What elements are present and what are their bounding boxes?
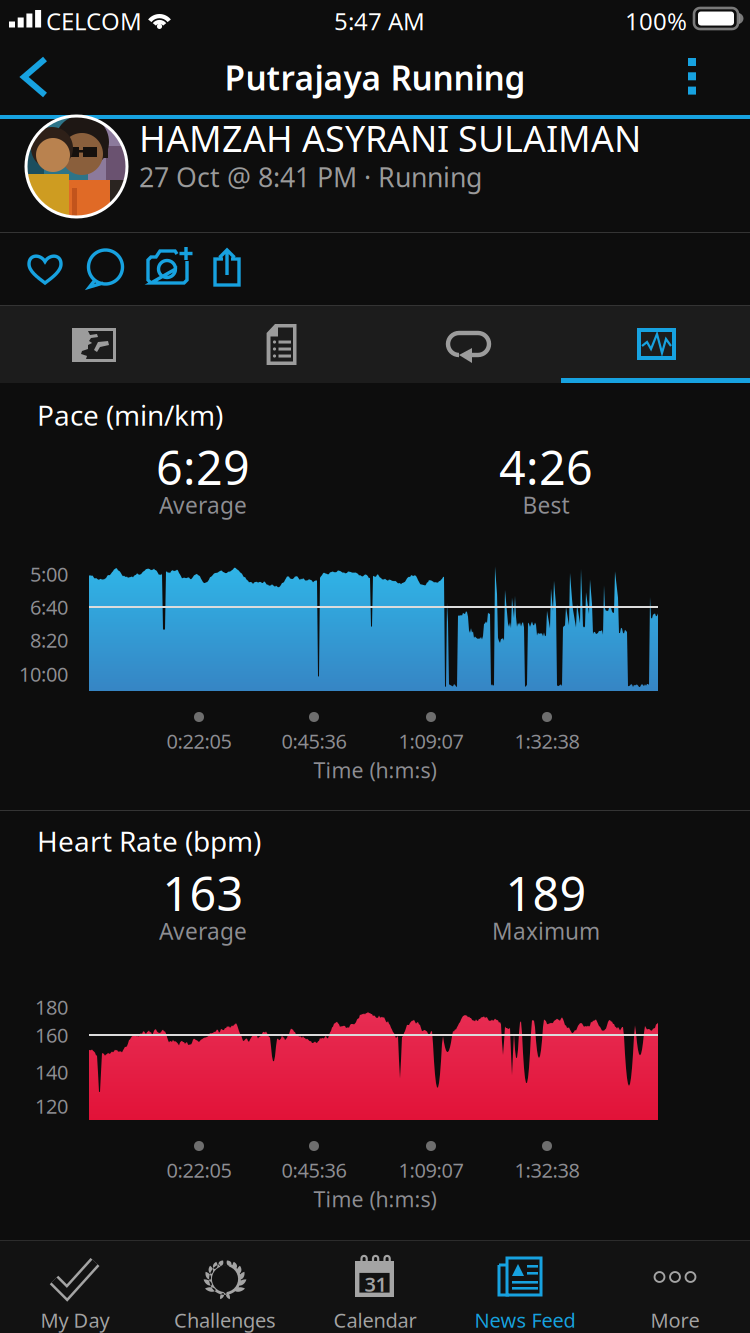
staticText: 31: [364, 1271, 386, 1297]
staticText: 120: [35, 1093, 68, 1119]
staticText: Time (h:m:s): [313, 756, 436, 784]
button[interactable]: Back: [0, 41, 72, 115]
button[interactable]: 31: [300, 1241, 450, 1333]
staticText: Heart Rate (bpm): [37, 822, 261, 860]
staticText: 4:26: [499, 436, 593, 498]
staticText: Average: [159, 490, 247, 520]
staticText: 5:00: [30, 561, 68, 587]
button[interactable]: News Feed: [450, 1241, 600, 1333]
staticText: Time (h:m:s): [313, 1185, 436, 1213]
staticText: 163: [162, 862, 243, 924]
staticText: 1:32:38: [514, 1157, 579, 1183]
staticText: Maximum: [492, 916, 600, 946]
staticText: Best: [522, 490, 569, 520]
staticText: 0:45:36: [281, 728, 346, 754]
staticText: 0:22:05: [166, 1157, 231, 1183]
staticText: 27 Oct @ 8:41 PM · Running: [139, 159, 482, 195]
staticText: 10:00: [19, 661, 68, 687]
button[interactable]: Challenges: [150, 1241, 300, 1333]
staticText: Challenges: [174, 1307, 276, 1333]
staticText: 180: [35, 994, 68, 1020]
staticText: My Day: [40, 1307, 109, 1333]
staticText: Average: [159, 916, 247, 946]
button[interactable]: Map: [0, 306, 187, 383]
staticText: 1:09:07: [398, 728, 463, 754]
staticText: 8:20: [30, 627, 68, 653]
button[interactable]: More: [600, 1241, 750, 1333]
staticText: 6:29: [156, 436, 250, 498]
staticText: 140: [35, 1059, 68, 1085]
staticText: 160: [35, 1022, 68, 1048]
button[interactable]: Comment: [68, 235, 144, 305]
button[interactable]: Details: [187, 306, 374, 383]
staticText: 6:40: [30, 594, 68, 620]
staticText: 100%: [625, 5, 687, 37]
staticText: 5:47 AM: [334, 5, 425, 37]
button[interactable]: Charts: [561, 306, 750, 383]
staticText: Pace (min/km): [37, 396, 223, 434]
staticText: Calendar: [333, 1307, 416, 1333]
staticText: 1:32:38: [514, 728, 579, 754]
staticText: 0:45:36: [281, 1157, 346, 1183]
staticText: News Feed: [474, 1307, 575, 1333]
staticText: Putrajaya Running: [224, 55, 525, 100]
staticText: HAMZAH ASYRANI SULAIMAN: [139, 114, 641, 162]
staticText: 1:09:07: [398, 1157, 463, 1183]
button[interactable]: Add photo: [130, 235, 206, 305]
button[interactable]: Share: [192, 235, 268, 305]
button[interactable]: Like: [6, 235, 82, 305]
button[interactable]: Laps: [374, 306, 561, 383]
staticText: More: [650, 1307, 699, 1333]
staticText: 0:22:05: [166, 728, 231, 754]
button[interactable]: My Day: [0, 1241, 150, 1333]
staticText: 189: [505, 862, 586, 924]
staticText: CELCOM: [46, 5, 142, 37]
button[interactable]: More options: [656, 41, 736, 115]
